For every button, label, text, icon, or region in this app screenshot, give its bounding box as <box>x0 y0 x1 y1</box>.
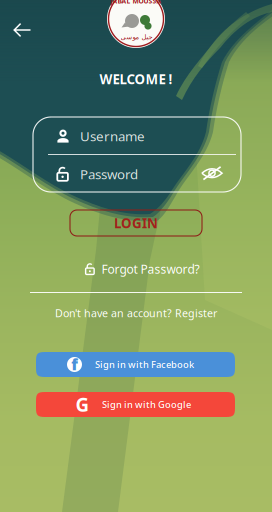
staticText: LOGIN <box>114 214 158 232</box>
staticText: G <box>75 392 89 417</box>
staticText: Forgot Password? <box>102 261 200 277</box>
staticText: f <box>71 353 78 375</box>
staticText: Username <box>80 127 145 145</box>
button[interactable]: Back <box>2 10 42 50</box>
button[interactable]: LOGIN <box>70 210 202 236</box>
button[interactable]: Forgot Password? <box>80 259 205 279</box>
staticText: JABAL MOUSSA <box>110 0 161 5</box>
staticText: Password <box>80 165 138 183</box>
button[interactable]: G <box>36 392 235 417</box>
button[interactable]: Don't have an account? Register <box>46 304 226 322</box>
staticText: Sign in with Google <box>102 398 191 411</box>
staticText: WELCOME ! <box>99 70 172 88</box>
staticText: جبل موسى <box>120 33 152 41</box>
staticText: Don't have an account? Register <box>55 306 217 320</box>
staticText: Sign in with Facebook <box>95 358 194 371</box>
button[interactable]: f <box>36 352 235 377</box>
